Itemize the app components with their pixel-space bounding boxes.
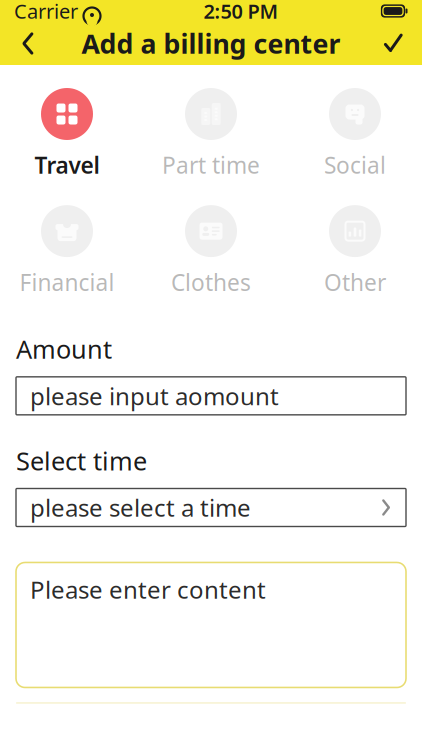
staticText: Financial [19,267,114,297]
staticText: please select a time [30,492,251,523]
staticText: Clothes [171,267,251,297]
button[interactable]: Clothes [146,201,276,301]
button[interactable]: Other [290,201,420,301]
staticText: Select time [16,444,147,477]
staticText: Travel [34,150,99,180]
button[interactable]: Please enter content [0,562,422,687]
button[interactable]: Travel [2,84,132,184]
button[interactable]: please select a time [0,488,422,526]
staticText: Part time [162,150,260,180]
button[interactable]: please input aomount [0,377,422,415]
button[interactable]: Social [290,84,420,184]
button[interactable]: Financial [2,201,132,301]
button[interactable]: Back [6,22,50,65]
button[interactable]: Save [372,22,416,65]
staticText: Amount [16,332,112,366]
staticText: Social [324,150,386,180]
staticText: Other [324,267,386,297]
staticText: please input aomount [30,380,279,412]
staticText: 2:50 PM [203,0,278,24]
staticText: Add a billing center [81,26,340,61]
staticText: Carrier [14,0,78,24]
staticText: Please enter content [30,573,266,605]
button[interactable]: Part time [146,84,276,184]
